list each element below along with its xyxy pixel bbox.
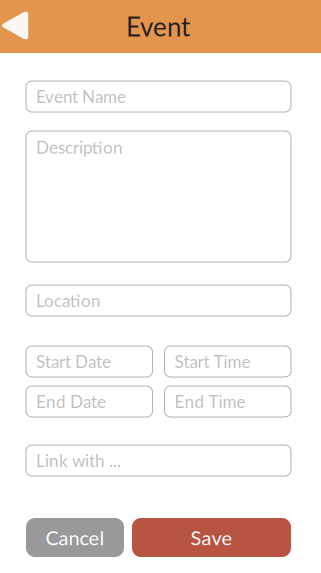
staticText: End Time — [174, 391, 245, 412]
staticText: Description — [36, 137, 123, 157]
button[interactable]: Link with ... — [26, 445, 291, 476]
staticText: Start Time — [174, 351, 250, 372]
button[interactable]: Event Name — [26, 81, 291, 112]
button[interactable]: Start Date — [26, 346, 152, 377]
staticText: Event — [126, 11, 190, 42]
staticText: Start Date — [36, 351, 111, 372]
button[interactable]: Back — [0, 0, 41, 53]
staticText: Cancel — [45, 525, 104, 549]
staticText: Link with ... — [36, 450, 121, 471]
staticText: Event Name — [36, 86, 126, 107]
button[interactable]: End Date — [26, 386, 152, 417]
button[interactable]: Save — [132, 518, 291, 557]
staticText: Location — [36, 290, 101, 311]
button[interactable]: Cancel — [26, 518, 124, 557]
staticText: End Date — [36, 391, 106, 412]
staticText: Save — [190, 525, 232, 549]
button[interactable]: Description — [26, 131, 291, 262]
button[interactable]: Location — [26, 285, 291, 316]
button[interactable]: Start Time — [164, 346, 291, 377]
button[interactable]: End Time — [164, 386, 291, 417]
